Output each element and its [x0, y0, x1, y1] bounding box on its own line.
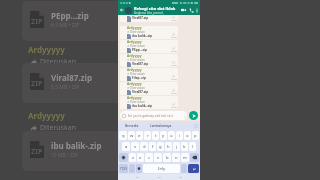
staticText: Diteruskan: [130, 44, 145, 48]
button[interactable]: d: [140, 142, 148, 151]
staticText: 12.32: [171, 78, 177, 81]
button[interactable]: z: [129, 153, 136, 162]
button[interactable]: Diteruskan: [120, 15, 178, 22]
button[interactable]: Ardyyyyy: [120, 54, 178, 67]
staticText: Diteruskan: [130, 100, 145, 104]
button[interactable]: x: [137, 153, 144, 162]
button[interactable]: Ardyyyyy: [120, 96, 178, 109]
button[interactable]: m: [181, 153, 189, 162]
staticText: x: [139, 155, 142, 161]
staticText: i: [179, 133, 181, 139]
button[interactable]: k: [181, 142, 188, 151]
staticText: t: [155, 133, 157, 139]
staticText: ibu balik-.zip: [132, 104, 153, 108]
button[interactable]: u: [168, 131, 175, 140]
button[interactable]: Symbols: [119, 164, 128, 173]
other: Download: [172, 89, 175, 92]
button[interactable]: t: [152, 131, 159, 140]
button[interactable]: Shift: [119, 153, 128, 162]
button[interactable]: Comma: [129, 164, 135, 173]
staticText: h: [167, 144, 170, 150]
button[interactable]: g: [157, 142, 164, 151]
staticText: Ardyyyyy: [127, 40, 142, 44]
staticText: q: [122, 133, 125, 139]
staticText: ibu balik-.zip: [132, 34, 153, 38]
button[interactable]: o: [184, 131, 191, 140]
staticText: Ardyyyyy: [28, 44, 65, 55]
button[interactable]: a: [122, 142, 130, 151]
button[interactable]: l: [189, 142, 196, 151]
staticText: Ini ya ini galeray sak tok sini disepask…: [128, 113, 185, 118]
staticText: w: [130, 133, 134, 139]
button[interactable]: Send: [189, 111, 198, 120]
staticText: n: [175, 155, 178, 161]
staticText: 12.32: [171, 64, 177, 67]
staticText: ,: [132, 167, 133, 171]
button[interactable]: n: [172, 153, 180, 162]
staticText: .: [184, 167, 185, 171]
staticText: Ardyyyyy: [127, 68, 142, 72]
button[interactable]: Ardyyyyy: [120, 40, 178, 53]
staticText: e: [138, 133, 141, 139]
button[interactable]: Ardyyyyy: [120, 68, 178, 81]
other: Back: [120, 8, 124, 12]
staticText: Diteruskan: [130, 72, 145, 76]
button[interactable]: b: [163, 153, 171, 162]
staticText: Bersedia: [125, 124, 139, 128]
staticText: ZIP: [31, 146, 43, 156]
button[interactable]: Period: [181, 164, 187, 173]
button[interactable]: f: [149, 142, 156, 151]
staticText: Diteruskan: [40, 57, 76, 67]
button[interactable]: Ardyyyyy: [120, 82, 178, 95]
button[interactable]: i: [176, 131, 183, 140]
staticText: Diteruskan: [40, 123, 76, 133]
button[interactable]: r: [144, 131, 151, 140]
button[interactable]: c: [145, 153, 153, 162]
button[interactable]: Ardyyyyy: [120, 26, 178, 39]
button[interactable]: Inly: [143, 164, 180, 173]
staticText: Viral87.zip: [132, 62, 149, 66]
staticText: z: [132, 155, 134, 161]
button[interactable]: Ini ya ini galeray sak tok sini disepask…: [120, 111, 187, 120]
button[interactable]: v: [154, 153, 162, 162]
button[interactable]: h: [165, 142, 172, 151]
button[interactable]: Enter: [188, 164, 199, 173]
staticText: u: [170, 133, 173, 139]
staticText: ?123: [120, 167, 127, 171]
staticText: 6.5 MB • ZIP: [51, 84, 80, 91]
button[interactable]: Backspace: [190, 153, 199, 162]
button[interactable]: e: [136, 131, 143, 140]
button[interactable]: q: [119, 131, 127, 140]
staticText: Ardyyyyy: [127, 82, 142, 86]
button[interactable]: y: [160, 131, 167, 140]
staticText: Angkasa kita, ponsel, menanawana dan: [134, 11, 181, 15]
staticText: Inly: [158, 166, 166, 172]
button[interactable]: j: [173, 142, 180, 151]
staticText: b: [166, 155, 169, 161]
other: Download: [172, 33, 175, 36]
staticText: k: [183, 144, 186, 150]
staticText: 12.32: [171, 92, 177, 95]
other: Download: [172, 47, 175, 50]
staticText: r: [147, 133, 149, 139]
staticText: d: [143, 144, 146, 150]
staticText: f: [152, 144, 154, 150]
button[interactable]: w: [128, 131, 135, 140]
staticText: s: [134, 144, 137, 150]
staticText: 12.32: [171, 106, 177, 109]
staticText: v: [157, 155, 160, 161]
button[interactable]: p: [192, 131, 199, 140]
button[interactable]: ZIP: [22, 131, 122, 171]
staticText: Bebagi cita slat lklak belajar: [134, 6, 181, 11]
button[interactable]: ZIP: [22, 1, 122, 41]
button[interactable]: Emoji: [136, 164, 142, 173]
button[interactable]: s: [131, 142, 139, 151]
staticText: Lambalamaya: [150, 124, 172, 128]
staticText: 12.32: [171, 19, 177, 22]
staticText: ibu balik-.zip: [51, 140, 102, 151]
button[interactable]: ZIP: [22, 63, 122, 103]
